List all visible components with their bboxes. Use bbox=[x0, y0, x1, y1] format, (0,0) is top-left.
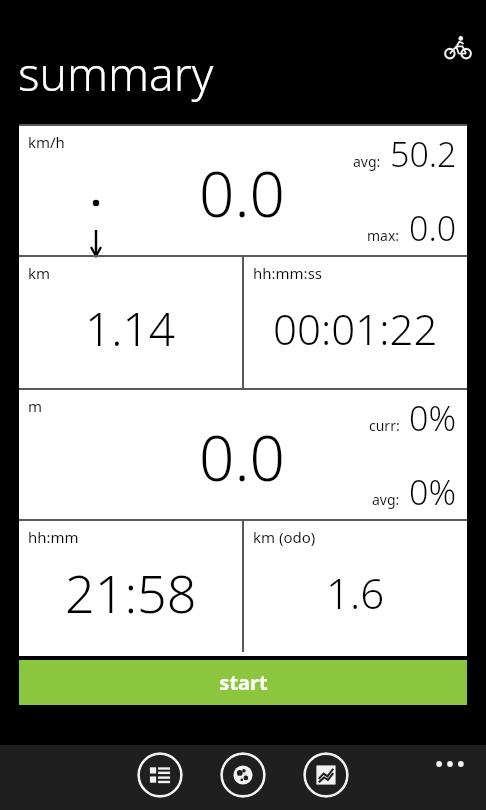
button[interactable]: km (odo) bbox=[244, 521, 467, 652]
staticText: km (odo) bbox=[253, 527, 316, 547]
staticText: summary bbox=[18, 42, 214, 105]
button[interactable]: hh:mm:ss bbox=[244, 257, 467, 388]
staticText: 0% bbox=[409, 395, 457, 441]
staticText: 0.0 bbox=[199, 415, 285, 499]
button[interactable]: start bbox=[19, 660, 467, 705]
button[interactable]: Charts bbox=[303, 752, 349, 798]
staticText: 00:01:22 bbox=[273, 300, 438, 357]
button[interactable]: hh:mm bbox=[19, 521, 242, 652]
staticText: hh:mm bbox=[28, 527, 79, 547]
staticText: hh:mm:ss bbox=[253, 263, 323, 283]
button[interactable]: km/h bbox=[19, 126, 467, 255]
button[interactable]: Map bbox=[220, 752, 266, 798]
staticText: 0.0 bbox=[409, 205, 457, 251]
staticText: m bbox=[28, 396, 43, 416]
staticText: avg: bbox=[372, 490, 400, 509]
staticText: 21:58 bbox=[65, 557, 197, 628]
button[interactable]: Summary list bbox=[137, 752, 183, 798]
staticText: start bbox=[219, 669, 268, 696]
staticText: km bbox=[28, 263, 51, 283]
staticText: km/h bbox=[28, 132, 65, 152]
other: Activity: cycling bbox=[444, 34, 472, 62]
button[interactable]: m bbox=[19, 390, 467, 519]
staticText: 1.14 bbox=[85, 297, 176, 360]
staticText: curr: bbox=[369, 416, 400, 435]
staticText: max: bbox=[367, 226, 400, 245]
staticText: 50.2 bbox=[390, 131, 457, 177]
button[interactable]: km bbox=[19, 257, 242, 388]
staticText: 0% bbox=[409, 469, 457, 515]
staticText: 0.0 bbox=[199, 151, 285, 235]
staticText: 1.6 bbox=[326, 564, 385, 621]
staticText: avg: bbox=[353, 152, 381, 171]
button[interactable]: More options bbox=[426, 749, 474, 779]
